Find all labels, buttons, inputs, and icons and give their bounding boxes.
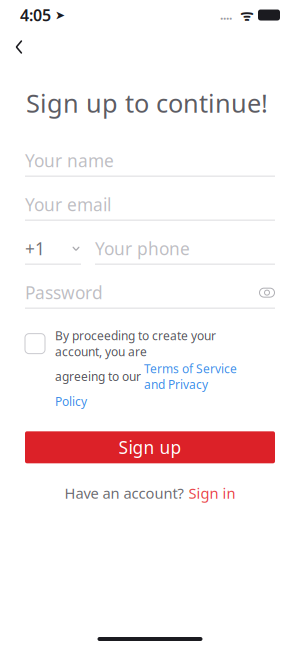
staticText: Password bbox=[25, 281, 103, 304]
staticText: Sign up to continue! bbox=[26, 86, 268, 120]
staticText: .... bbox=[220, 7, 232, 23]
staticText: Your email bbox=[25, 193, 111, 216]
button[interactable]: Password bbox=[25, 278, 275, 309]
staticText: ➤ bbox=[51, 8, 65, 22]
button[interactable]: Your email bbox=[25, 190, 275, 221]
staticText: Policy bbox=[55, 393, 87, 409]
staticText: By proceeding to create your account, yo… bbox=[55, 328, 216, 359]
staticText: agreeing to our bbox=[55, 368, 144, 384]
button[interactable]: By proceeding to create your account, yo… bbox=[25, 328, 275, 409]
staticText: Terms of Service and Privacy bbox=[144, 360, 237, 392]
staticText: ᯤ bbox=[232, 5, 253, 25]
staticText: Your name bbox=[25, 149, 114, 172]
button[interactable]: +1 bbox=[25, 234, 275, 265]
staticText: Sign in bbox=[188, 483, 235, 503]
button[interactable]: Sign up bbox=[25, 431, 275, 463]
button[interactable]: Back bbox=[6, 34, 32, 60]
staticText: 4:05 bbox=[20, 4, 51, 26]
staticText: +1 bbox=[25, 237, 45, 260]
staticText: Sign up bbox=[118, 436, 181, 459]
staticText: Have an account? bbox=[64, 483, 183, 503]
button[interactable]: Your name bbox=[25, 146, 275, 177]
staticText: Your phone bbox=[95, 237, 190, 260]
button[interactable]: Have an account? bbox=[54, 477, 245, 509]
